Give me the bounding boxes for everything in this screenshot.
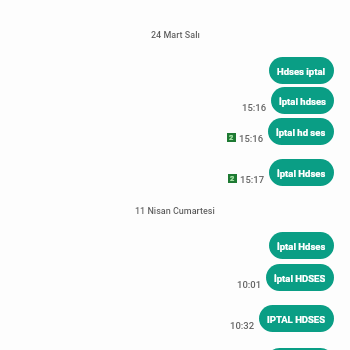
staticText: 11 Nisan Cumartesi	[135, 206, 215, 217]
staticText: İptal hd ses	[276, 127, 326, 138]
button[interactable]: Hdses iptal	[269, 57, 334, 84]
button[interactable]: 2 unread messages marker	[228, 174, 237, 183]
button[interactable]: İptal Hdses	[269, 159, 334, 186]
button[interactable]: İptal HDSES	[266, 264, 334, 291]
staticText: 10:32	[230, 320, 255, 331]
button[interactable]: İptal Hdses	[269, 232, 334, 259]
staticText: IPTAL HDSES	[267, 314, 326, 325]
button[interactable]: 2 unread messages marker	[227, 133, 236, 142]
staticText: 15:17	[240, 174, 265, 185]
staticText: 2	[229, 133, 234, 142]
button[interactable]: İptal hdses	[271, 87, 334, 114]
staticText: 15:16	[242, 102, 267, 113]
staticText: İptal Hdses	[277, 241, 326, 252]
staticText: İptal HDSES	[274, 273, 326, 284]
staticText: Hdses iptal	[277, 66, 326, 77]
staticText: 2	[230, 174, 235, 183]
staticText: 15:16	[239, 133, 264, 144]
staticText: 24 Mart Salı	[151, 30, 200, 41]
button[interactable]: İptal hd ses	[268, 118, 334, 145]
staticText: İptal hdses	[279, 96, 326, 107]
staticText: İptal Hdses	[277, 168, 326, 179]
button[interactable]: İptal HDSES	[266, 348, 334, 350]
staticText: 10:01	[237, 279, 262, 290]
button[interactable]: IPTAL HDSES	[259, 305, 334, 332]
